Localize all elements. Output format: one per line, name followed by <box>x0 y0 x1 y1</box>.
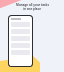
staticText: in one place <box>23 7 41 11</box>
staticText: Manage all your tasks <box>16 3 49 7</box>
